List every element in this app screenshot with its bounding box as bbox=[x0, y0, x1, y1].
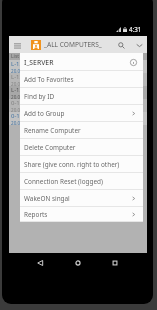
staticText: 4:31 bbox=[129, 25, 142, 33]
staticText: Add to Group bbox=[24, 109, 65, 118]
staticText: WakeON singal bbox=[24, 194, 70, 203]
staticText: Delete Computer bbox=[24, 143, 76, 152]
staticText: 20.04.19 bbox=[11, 81, 30, 86]
staticText: Find by ID bbox=[24, 92, 55, 101]
staticText: 20.04.19 bbox=[11, 68, 30, 73]
button[interactable]: Delete Computer bbox=[20, 139, 143, 156]
button[interactable]: WakeON singal bbox=[20, 190, 143, 207]
button[interactable]: Reports bbox=[20, 207, 143, 222]
button[interactable]: Home bbox=[71, 253, 85, 272]
button[interactable]: Add to Group bbox=[20, 105, 143, 122]
button[interactable]: App bbox=[31, 40, 41, 50]
staticText: List name bbox=[11, 53, 34, 60]
staticText: 20.04.19 bbox=[11, 107, 30, 112]
button[interactable]: Back bbox=[33, 253, 47, 272]
button[interactable]: Menu bbox=[11, 37, 23, 53]
staticText: Connection Reset (logged) bbox=[24, 177, 103, 186]
button[interactable]: Search bbox=[114, 37, 128, 53]
staticText: Add To Favorites bbox=[24, 75, 74, 84]
button[interactable]: Share (give conn. right to other) bbox=[20, 156, 143, 173]
staticText: L-121 bbox=[11, 73, 27, 81]
staticText: I_SERVER bbox=[24, 58, 54, 67]
button[interactable]: Recents bbox=[108, 253, 122, 272]
button[interactable]: Info bbox=[129, 58, 138, 67]
staticText: 20.04.19 bbox=[11, 120, 30, 125]
staticText: 0-123 bbox=[11, 99, 27, 107]
staticText: 0-124 bbox=[11, 112, 27, 120]
button[interactable]: Rename Computer bbox=[20, 122, 143, 139]
staticText: L-122 bbox=[11, 86, 27, 94]
button[interactable]: Find by ID bbox=[20, 88, 143, 105]
staticText: _ALL COMPUTERS_ bbox=[44, 40, 102, 49]
staticText: Share (give conn. right to other) bbox=[24, 160, 120, 169]
staticText: Rename Computer bbox=[24, 126, 81, 135]
button[interactable]: More options bbox=[132, 37, 146, 53]
button[interactable]: Add To Favorites bbox=[20, 71, 143, 88]
staticText: L-120 bbox=[11, 60, 27, 68]
staticText: 20.04.19 bbox=[11, 94, 30, 99]
button[interactable]: Connection Reset (logged) bbox=[20, 173, 143, 190]
staticText: Reports bbox=[24, 210, 48, 219]
